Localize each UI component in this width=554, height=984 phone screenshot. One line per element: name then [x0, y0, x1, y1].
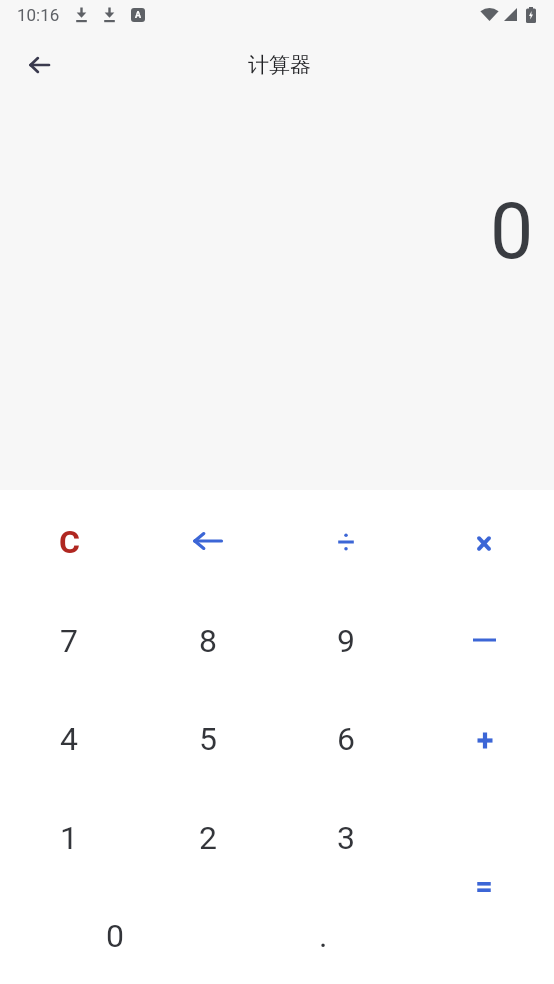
staticText: 2 — [199, 819, 217, 857]
button[interactable] — [277, 493, 415, 591]
button[interactable]: C — [0, 493, 138, 591]
button[interactable] — [415, 789, 553, 984]
button[interactable]: 3 — [277, 789, 415, 887]
staticText: 4 — [60, 720, 78, 758]
button[interactable] — [15, 41, 63, 89]
button[interactable]: 0 — [46, 887, 184, 984]
staticText: 0 — [106, 917, 124, 955]
button[interactable]: 8 — [139, 592, 277, 690]
button[interactable] — [415, 591, 553, 689]
button[interactable]: 6 — [277, 690, 415, 788]
staticText: 9 — [337, 622, 355, 660]
button[interactable]: 7 — [0, 592, 138, 690]
staticText: 1 — [60, 819, 78, 857]
staticText: . — [319, 917, 328, 955]
button[interactable] — [139, 492, 277, 590]
button[interactable]: 9 — [277, 592, 415, 690]
button[interactable]: 1 — [0, 789, 138, 887]
staticText: 3 — [337, 819, 355, 857]
staticText: C — [59, 523, 80, 561]
staticText: 5 — [199, 720, 217, 758]
button[interactable] — [416, 691, 554, 789]
button[interactable]: 5 — [139, 690, 277, 788]
button[interactable] — [415, 494, 553, 592]
button[interactable]: 4 — [0, 690, 138, 788]
staticText: 计算器 — [248, 52, 311, 78]
staticText: A — [135, 10, 142, 21]
button[interactable]: . — [254, 887, 392, 984]
staticText: 8 — [199, 622, 217, 660]
staticText: 6 — [337, 720, 355, 758]
staticText: 10:16 — [17, 5, 60, 25]
staticText: 0 — [490, 187, 534, 277]
staticText: 7 — [60, 622, 78, 660]
button[interactable]: 2 — [139, 789, 277, 887]
